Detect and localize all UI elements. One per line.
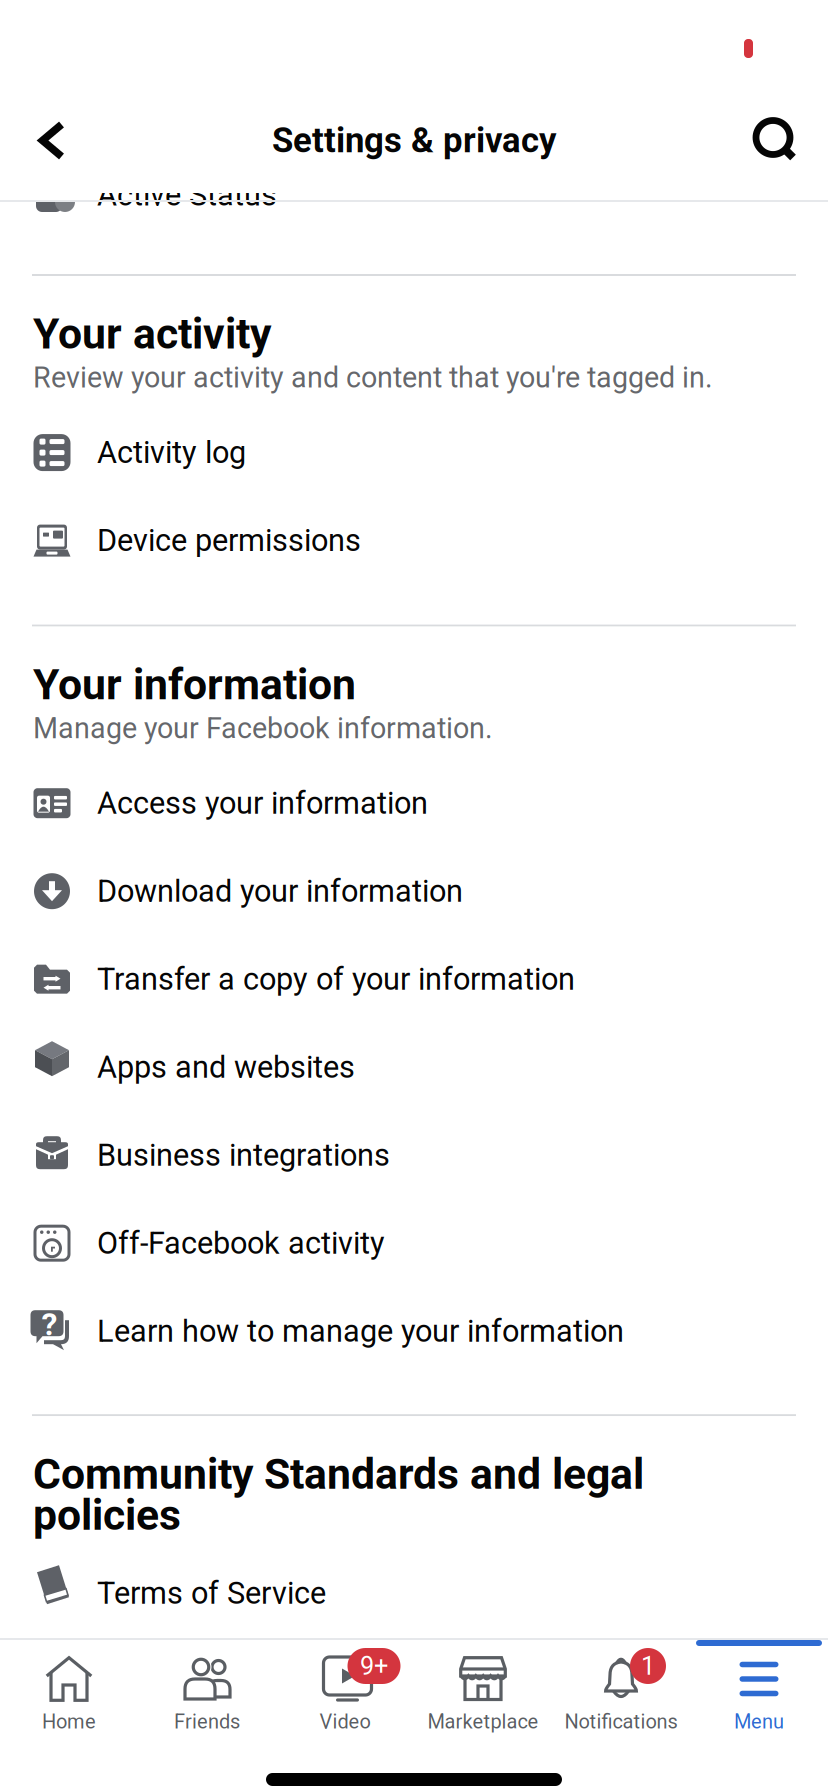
staticText: Business integrations <box>97 1137 390 1173</box>
button[interactable]: Search <box>738 102 814 178</box>
staticText: Community Standards and legal <box>33 1449 644 1499</box>
staticText: Download your information <box>97 873 463 909</box>
staticText: Video <box>319 1710 370 1733</box>
staticText: Apps and websites <box>97 1049 355 1085</box>
button[interactable]: Friends <box>138 1640 276 1753</box>
staticText: Off-Facebook activity <box>97 1225 385 1261</box>
staticText: Your information <box>33 660 356 710</box>
button[interactable]: Device permissions <box>0 497 828 585</box>
button[interactable]: ? <box>0 1287 828 1375</box>
staticText: Notifications <box>564 1710 677 1733</box>
button[interactable]: Back <box>14 102 90 178</box>
button[interactable]: Marketplace <box>414 1640 552 1753</box>
staticText: Review your activity and content that yo… <box>33 361 713 395</box>
button[interactable]: Access your information <box>0 759 828 847</box>
staticText: Device permissions <box>97 523 361 558</box>
staticText: Active Status <box>97 177 277 213</box>
button[interactable]: Activity log <box>0 409 828 497</box>
button[interactable]: 1 <box>552 1640 690 1753</box>
staticText: Activity log <box>97 435 246 470</box>
button[interactable]: Transfer a copy of your information <box>0 935 828 1023</box>
staticText: ? <box>41 1305 57 1343</box>
button[interactable]: Menu <box>690 1640 828 1753</box>
button[interactable]: Apps and websites <box>0 1023 828 1111</box>
button[interactable]: Download your information <box>0 847 828 935</box>
button[interactable]: Terms of Service <box>0 1549 828 1637</box>
staticText: 1 <box>641 1651 655 1681</box>
staticText: Marketplace <box>427 1710 538 1733</box>
button[interactable]: Off-Facebook activity <box>0 1199 828 1287</box>
staticText: Learn how to manage your information <box>97 1313 624 1349</box>
staticText: Manage your Facebook information. <box>33 712 493 745</box>
button[interactable]: Home <box>0 1640 138 1753</box>
staticText: 9+ <box>360 1651 388 1681</box>
staticText: Menu <box>734 1710 784 1733</box>
staticText: Friends <box>174 1710 240 1733</box>
button[interactable]: Business integrations <box>0 1111 828 1199</box>
staticText: Home <box>42 1710 96 1733</box>
staticText: Transfer a copy of your information <box>97 961 575 997</box>
staticText: policies <box>33 1490 181 1540</box>
staticText: Access your information <box>97 785 428 821</box>
staticText: Settings & privacy <box>272 120 556 161</box>
button[interactable]: 9+ <box>276 1640 414 1753</box>
staticText: Terms of Service <box>97 1575 326 1611</box>
staticText: Your activity <box>33 309 271 359</box>
